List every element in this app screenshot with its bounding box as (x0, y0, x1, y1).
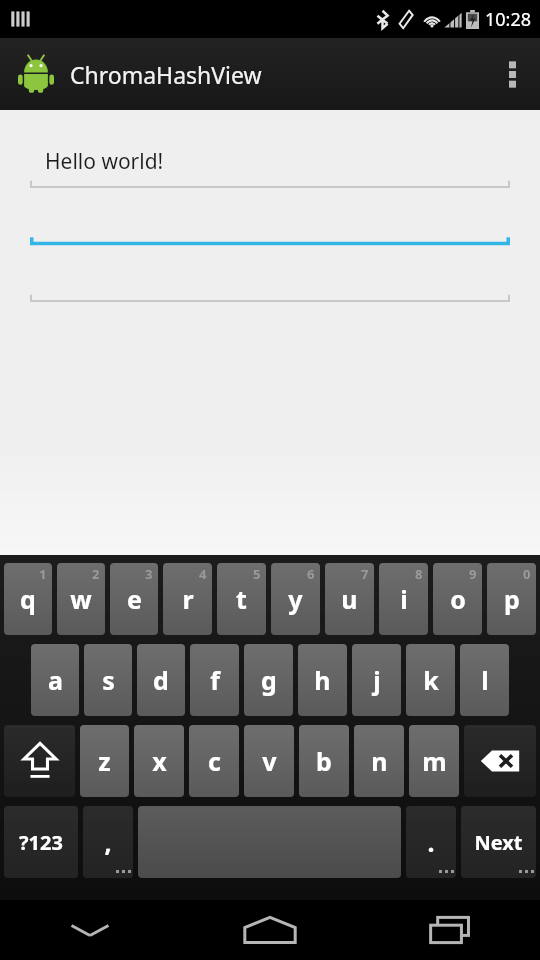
button[interactable]: v (244, 725, 294, 797)
staticText: t (236, 582, 247, 616)
button[interactable]: t (217, 563, 266, 635)
staticText: 7 (361, 565, 369, 583)
button[interactable]: h (298, 644, 347, 716)
staticText: 3 (145, 565, 153, 583)
staticText: s (102, 663, 115, 697)
staticText: ChromaHashView (70, 59, 262, 90)
button[interactable] (30, 253, 510, 303)
staticText: n (371, 744, 388, 778)
button[interactable]: Home (180, 900, 360, 960)
staticText: f (210, 663, 220, 697)
button[interactable]: Hide keyboard (0, 900, 180, 960)
button[interactable]: Next (461, 806, 536, 878)
staticText: r (182, 582, 194, 616)
button[interactable]: x (134, 725, 184, 797)
staticText: 2 (92, 565, 100, 583)
button[interactable]: y (271, 563, 320, 635)
staticText: z (98, 744, 111, 778)
button[interactable]: j (352, 644, 401, 716)
staticText: g (261, 663, 277, 697)
button[interactable]: More options (484, 38, 540, 110)
button[interactable]: q (4, 563, 52, 635)
button[interactable]: Recent apps (360, 900, 540, 960)
staticText: . (427, 825, 435, 859)
button[interactable] (30, 197, 510, 247)
staticText: 5 (253, 565, 261, 583)
button[interactable]: e (110, 563, 158, 635)
button[interactable]: , (83, 806, 133, 878)
staticText: k (423, 663, 439, 697)
button[interactable]: l (460, 644, 509, 716)
staticText: Hello world! (45, 147, 164, 176)
button[interactable]: Shift (4, 725, 75, 797)
button[interactable]: c (189, 725, 239, 797)
staticText: Next (474, 829, 523, 856)
button[interactable]: n (354, 725, 404, 797)
staticText: h (314, 663, 331, 697)
staticText: b (316, 744, 332, 778)
button[interactable]: a (31, 644, 79, 716)
button[interactable]: m (409, 725, 459, 797)
staticText: w (70, 582, 92, 616)
staticText: p (504, 582, 520, 616)
staticText: 1 (39, 565, 47, 583)
staticText: 9 (469, 565, 477, 583)
button[interactable]: p (487, 563, 536, 635)
staticText: 6 (307, 565, 315, 583)
button[interactable]: Space (138, 806, 401, 878)
staticText: a (48, 663, 63, 697)
staticText: j (373, 663, 381, 697)
staticText: v (262, 744, 277, 778)
button[interactable]: d (137, 644, 185, 716)
staticText: 8 (415, 565, 423, 583)
staticText: x (152, 744, 167, 778)
button[interactable]: b (299, 725, 349, 797)
button[interactable]: s (84, 644, 132, 716)
staticText: l (481, 663, 489, 697)
button[interactable]: ?123 (4, 806, 78, 878)
button[interactable]: . (406, 806, 456, 878)
button[interactable]: Backspace (464, 725, 536, 797)
button[interactable]: z (80, 725, 129, 797)
staticText: o (450, 582, 466, 616)
button[interactable]: i (379, 563, 428, 635)
staticText: m (422, 744, 447, 778)
staticText: d (153, 663, 169, 697)
button[interactable]: o (433, 563, 482, 635)
button[interactable]: Hello world! (30, 139, 510, 189)
staticText: ?123 (19, 829, 63, 856)
button[interactable]: w (57, 563, 105, 635)
staticText: q (20, 582, 36, 616)
staticText: c (208, 744, 221, 778)
staticText: 10:28 (485, 7, 532, 32)
button[interactable]: g (244, 644, 293, 716)
staticText: e (127, 582, 142, 616)
staticText: y (288, 582, 303, 616)
button[interactable]: k (406, 644, 455, 716)
staticText: , (104, 825, 112, 859)
staticText: 0 (523, 565, 531, 583)
staticText: 4 (199, 565, 207, 583)
button[interactable]: u (325, 563, 374, 635)
staticText: i (400, 582, 408, 616)
staticText: u (341, 582, 358, 616)
button[interactable]: r (163, 563, 212, 635)
button[interactable]: f (190, 644, 239, 716)
